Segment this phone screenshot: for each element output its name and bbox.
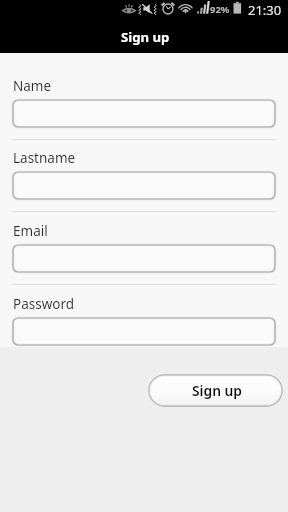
- button[interactable]: Sign up: [148, 374, 283, 407]
- button[interactable]: [12, 99, 276, 129]
- staticText: Sign up: [192, 381, 242, 400]
- staticText: Lastname: [13, 149, 76, 167]
- button[interactable]: [12, 317, 276, 347]
- staticText: Email: [13, 222, 48, 240]
- staticText: Sign up: [121, 28, 170, 46]
- staticText: Name: [13, 77, 52, 95]
- button[interactable]: [12, 171, 276, 201]
- button[interactable]: [12, 244, 276, 274]
- staticText: 92%: [210, 3, 230, 16]
- staticText: 21:30: [248, 1, 282, 17]
- staticText: Password: [13, 295, 75, 313]
